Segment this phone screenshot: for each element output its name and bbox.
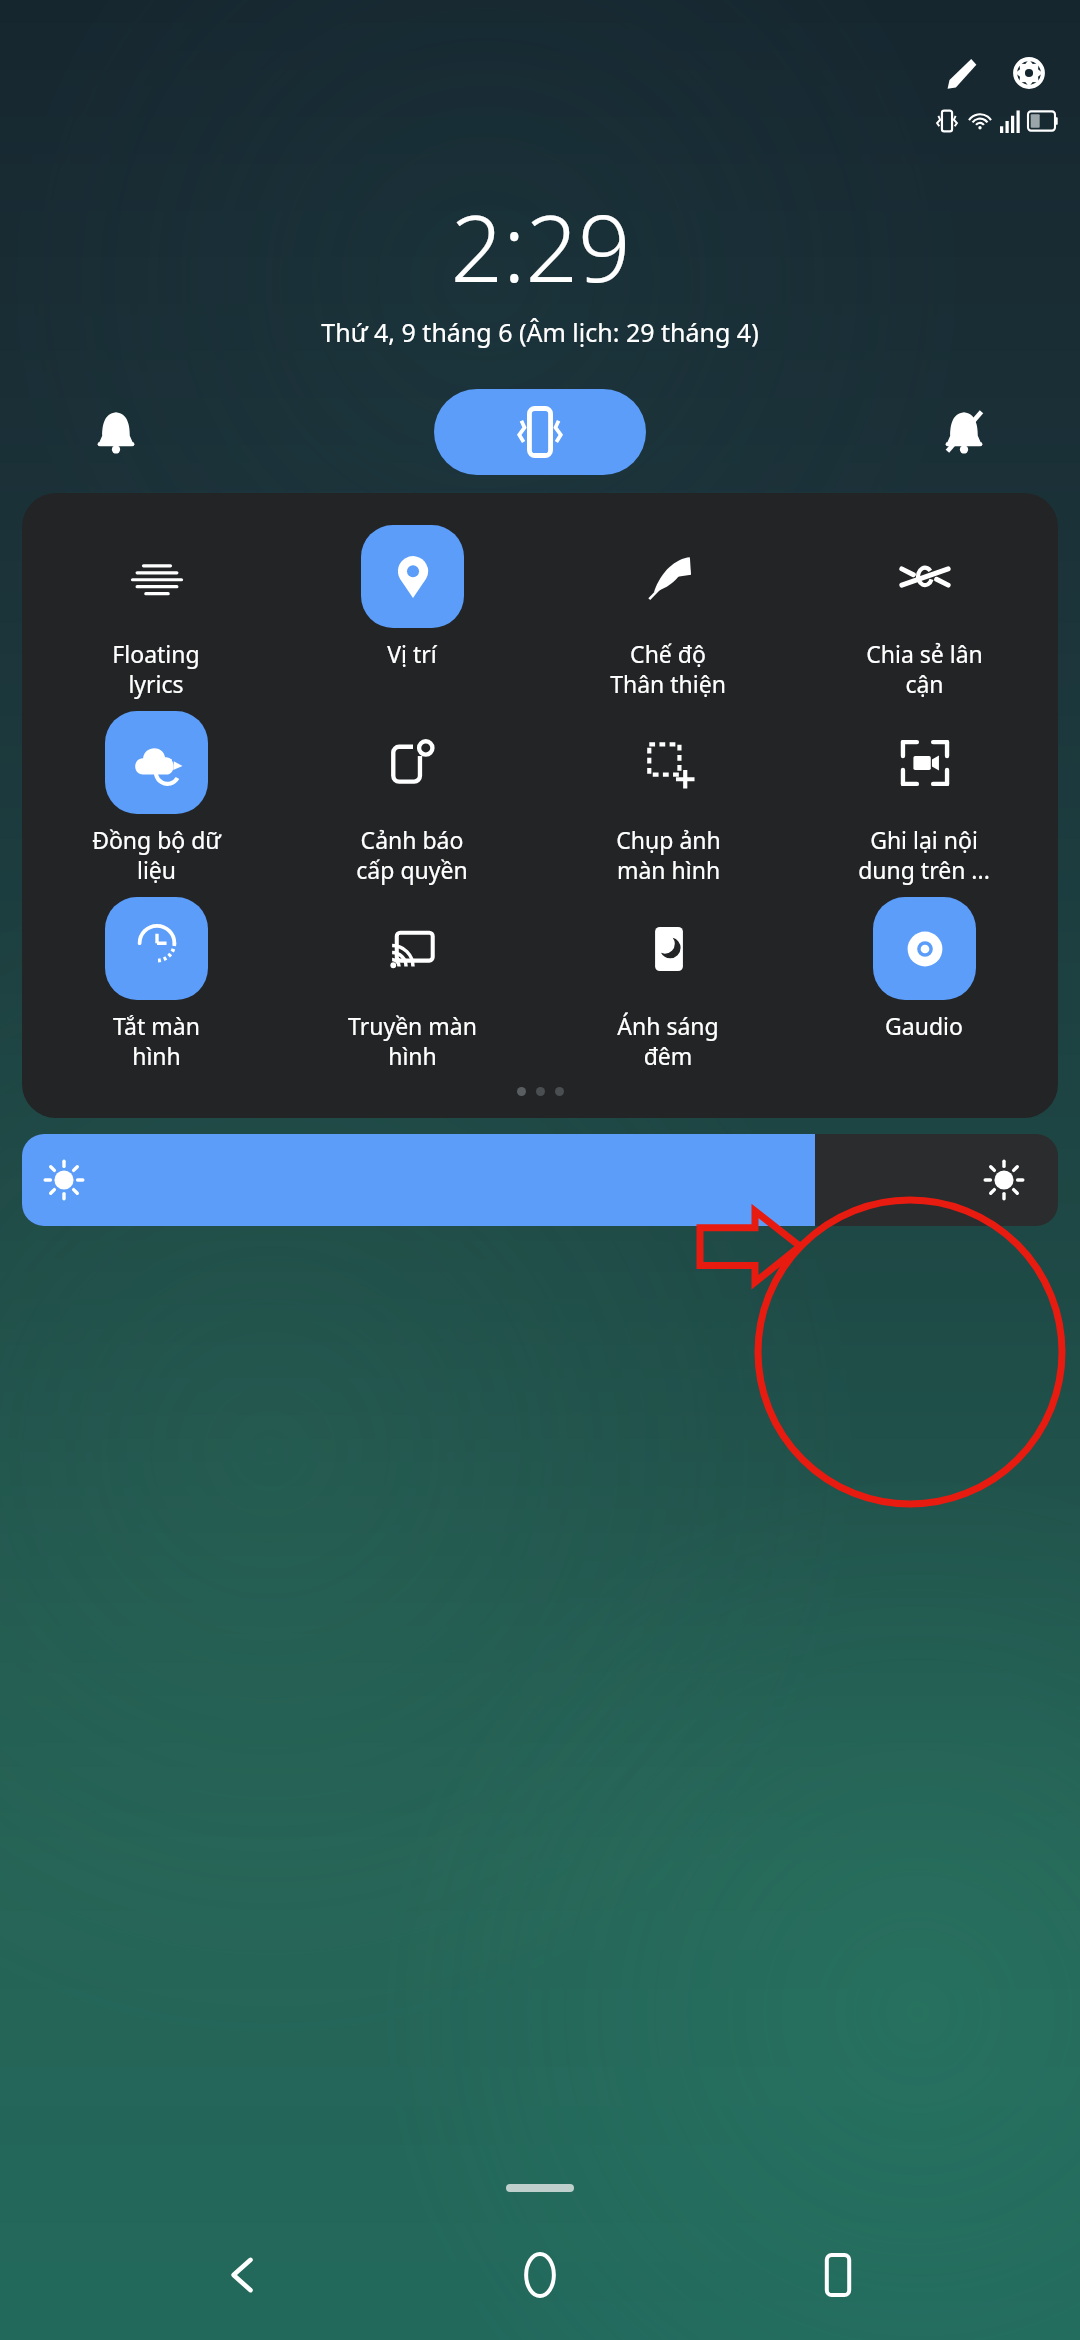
button[interactable]: Settings — [1002, 46, 1056, 100]
button[interactable]: Sound on — [60, 389, 172, 475]
button[interactable]: Tắt màn hình — [28, 891, 284, 1077]
button[interactable] — [22, 1134, 1058, 1226]
button[interactable]: Back — [188, 2220, 298, 2330]
staticText: Tắt màn hình — [113, 1010, 200, 1071]
staticText: 2:29 — [450, 184, 631, 309]
staticText: Gaudio — [885, 1010, 963, 1041]
button[interactable]: Edit — [934, 46, 988, 100]
button[interactable]: Chế độ Thân thiện — [540, 519, 796, 705]
button[interactable]: Ánh sáng đêm — [540, 891, 796, 1077]
staticText: Chụp ảnh màn hình — [616, 824, 721, 885]
staticText: Thứ 4, 9 tháng 6 (Âm lịch: 29 tháng 4) — [321, 315, 759, 349]
button[interactable]: Floating lyrics — [28, 519, 284, 705]
button[interactable]: Cảnh báo cấp quyền — [284, 705, 540, 891]
button[interactable]: Truyền màn hình — [284, 891, 540, 1077]
button[interactable]: Home — [485, 2220, 595, 2330]
button[interactable]: Vị trí — [284, 519, 540, 675]
staticText: Chia sẻ lân cận — [866, 638, 983, 699]
button[interactable]: Đồng bộ dữ liệu — [28, 705, 284, 891]
staticText: Floating lyrics — [112, 638, 200, 699]
button[interactable]: Chia sẻ lân cận — [796, 519, 1052, 705]
staticText: Cảnh báo cấp quyền — [356, 824, 468, 885]
button[interactable]: Mute — [908, 389, 1020, 475]
button[interactable]: Gaudio — [796, 891, 1052, 1047]
staticText: Vị trí — [387, 638, 437, 669]
button[interactable]: Recents — [783, 2220, 893, 2330]
staticText: Ánh sáng đêm — [617, 1010, 719, 1071]
staticText: Truyền màn hình — [348, 1010, 477, 1071]
button[interactable]: Chụp ảnh màn hình — [540, 705, 796, 891]
button[interactable]: Vibrate — [434, 389, 646, 475]
button[interactable]: Ghi lại nội dung trên ... — [796, 705, 1052, 891]
staticText: Đồng bộ dữ liệu — [92, 824, 221, 885]
staticText: Chế độ Thân thiện — [610, 638, 726, 699]
staticText: Ghi lại nội dung trên ... — [858, 824, 990, 885]
